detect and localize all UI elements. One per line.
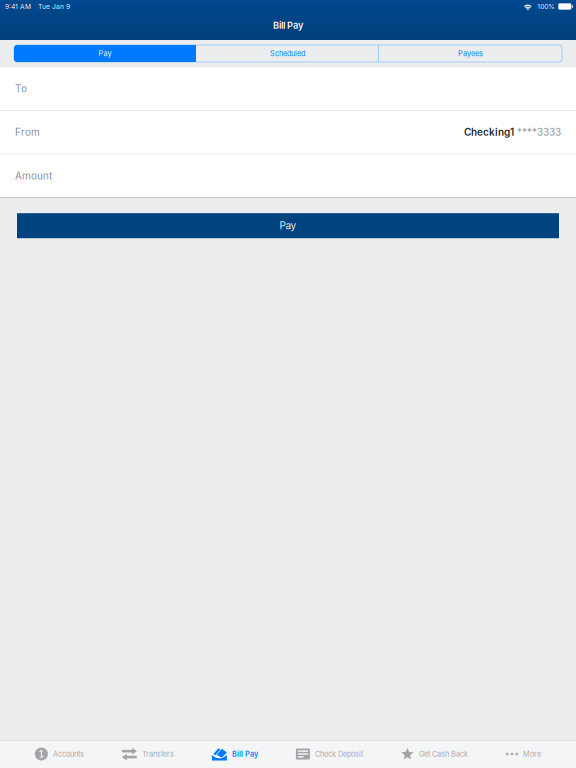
staticText: Checking1	[464, 126, 514, 138]
button[interactable]: Scheduled	[196, 45, 379, 62]
staticText: Get Cash Back	[419, 750, 468, 758]
staticText: 100%	[537, 2, 555, 11]
button[interactable]: Amount	[0, 154, 576, 197]
button[interactable]: Pay	[17, 213, 559, 238]
staticText: Amount	[15, 170, 52, 182]
button[interactable]: Pay	[14, 45, 196, 62]
button[interactable]: More	[506, 740, 541, 768]
staticText: Tue Jan 9	[38, 2, 70, 11]
staticText: Payees	[458, 49, 483, 58]
button[interactable]: Accounts	[35, 740, 84, 768]
button[interactable]: Transfers	[122, 740, 174, 768]
staticText: To	[15, 82, 27, 95]
staticText: Accounts	[53, 750, 84, 758]
button[interactable]: Payees	[379, 45, 562, 62]
staticText: ****3333	[517, 126, 561, 138]
button[interactable]: Check Deposit	[296, 740, 363, 768]
button[interactable]: Get Cash Back	[401, 740, 468, 768]
staticText: Pay	[98, 49, 111, 58]
staticText: Scheduled	[270, 49, 305, 58]
staticText: More	[523, 750, 541, 758]
button[interactable]: Bill Pay	[212, 740, 258, 768]
staticText: Check Deposit	[315, 750, 363, 758]
button[interactable]: From	[0, 111, 576, 154]
staticText: Bill Pay	[273, 20, 303, 31]
staticText: Transfers	[142, 750, 174, 758]
staticText: Pay	[279, 220, 296, 232]
staticText: 9:41 AM	[5, 2, 31, 11]
staticText: From	[15, 126, 40, 138]
staticText: Bill Pay	[232, 750, 258, 758]
